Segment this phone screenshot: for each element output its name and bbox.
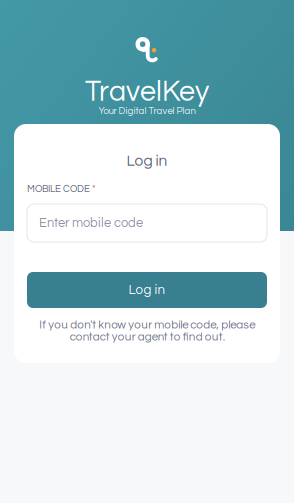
staticText: MOBILE CODE xyxy=(27,184,90,194)
staticText: * xyxy=(90,184,96,194)
staticText: If you don't know your mobile code, plea… xyxy=(39,319,255,343)
staticText: TravelKey xyxy=(85,77,209,107)
staticText: Log in xyxy=(126,153,167,169)
staticText: Your Digital Travel Plan xyxy=(98,106,195,116)
staticText: Enter mobile code xyxy=(39,216,143,230)
staticText: Log in xyxy=(128,283,165,297)
button[interactable]: Log in xyxy=(27,272,267,308)
